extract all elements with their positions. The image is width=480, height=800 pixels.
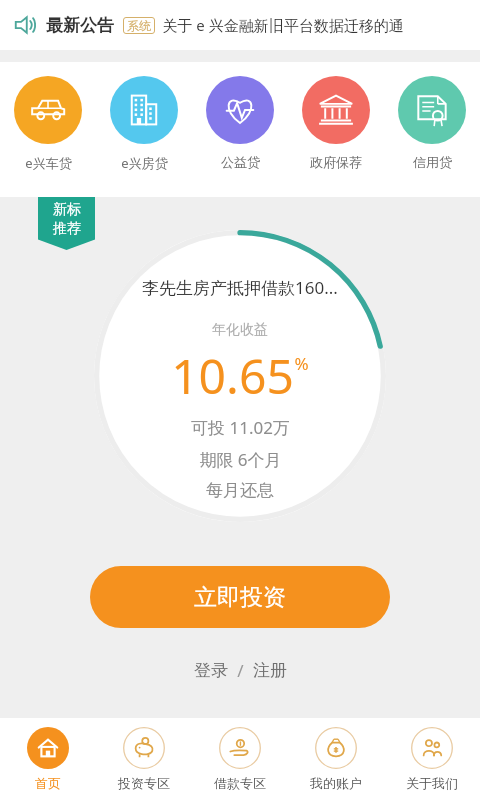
staticText: 年化收益 [212, 321, 268, 339]
staticText: e兴车贷 [25, 154, 72, 172]
button[interactable]: 政府保荐 [288, 62, 384, 197]
button[interactable]: 投资专区 [96, 718, 192, 800]
other: Announcement [14, 14, 36, 36]
staticText: 投资专区 [118, 775, 170, 791]
staticText: 政府保荐 [310, 154, 362, 170]
staticText: 关于我们 [406, 775, 458, 791]
button[interactable]: 首页 [0, 718, 96, 800]
staticText: 信用贷 [413, 154, 452, 170]
staticText: 10.65 [171, 343, 294, 408]
staticText: 登录 [194, 660, 228, 681]
staticText: 首页 [35, 775, 61, 791]
button[interactable]: 公益贷 [192, 62, 288, 197]
button[interactable]: 借款专区 [192, 718, 288, 800]
button[interactable]: 登录 [185, 655, 237, 686]
staticText: 注册 [253, 660, 287, 681]
button[interactable]: 注册 [244, 655, 296, 686]
staticText: 可投 11.02万 [191, 416, 290, 439]
staticText: 借款专区 [214, 775, 266, 791]
button[interactable]: 信用贷 [384, 62, 480, 197]
staticText: % [294, 352, 309, 375]
staticText: 立即投资 [194, 583, 286, 612]
staticText: 新标 [53, 201, 81, 219]
staticText: 推荐 [53, 220, 81, 238]
staticText: 每月还息 [206, 480, 274, 501]
staticText: 关于 e 兴金融新旧平台数据迁移的通 [162, 15, 404, 35]
button[interactable]: 我的账户 [288, 718, 384, 800]
button[interactable]: e兴车贷 [0, 62, 96, 197]
staticText: / [237, 659, 244, 682]
staticText: 公益贷 [221, 154, 260, 170]
button[interactable]: e兴房贷 [96, 62, 192, 197]
button[interactable]: 关于我们 [384, 718, 480, 800]
button[interactable]: Announcement [0, 0, 480, 50]
staticText: 系统 [127, 18, 151, 33]
staticText: e兴房贷 [121, 154, 168, 172]
button[interactable]: 李先生房产抵押借款160... [94, 230, 386, 522]
staticText: 最新公告 [46, 15, 114, 36]
staticText: 期限 6个月 [199, 448, 282, 471]
staticText: 我的账户 [310, 775, 362, 791]
button[interactable]: 立即投资 [90, 566, 390, 628]
staticText: 李先生房产抵押借款160... [142, 276, 338, 299]
